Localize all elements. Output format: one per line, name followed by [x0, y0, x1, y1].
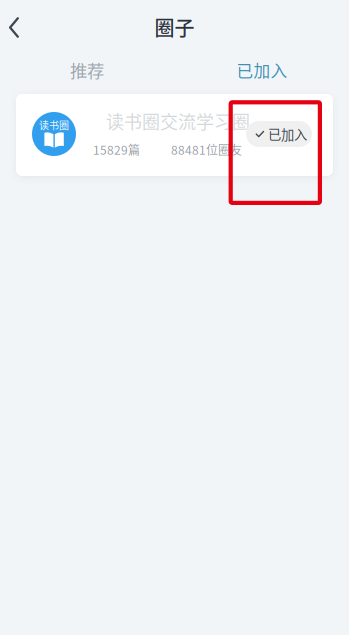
staticText: 读书圈	[39, 118, 69, 132]
staticText: 已加入	[236, 58, 287, 82]
button[interactable]: 读书圈	[16, 94, 333, 176]
button[interactable]: 已加入	[246, 121, 312, 147]
staticText: 88481位圈友	[171, 141, 242, 158]
button[interactable]: 推荐	[55, 60, 119, 80]
staticText: 读书圈交流学习圈	[106, 108, 250, 134]
staticText: 15829篇	[93, 141, 140, 158]
staticText: 圈子	[154, 12, 194, 41]
button[interactable]: Back	[0, 0, 44, 55]
staticText: 已加入	[268, 124, 307, 144]
button[interactable]: 已加入	[230, 60, 294, 80]
staticText: 推荐	[70, 57, 104, 83]
